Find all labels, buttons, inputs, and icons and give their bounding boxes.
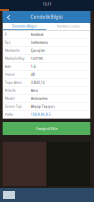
staticText: Arsa xyxy=(31,88,38,93)
staticText: Mahalle/Köy xyxy=(5,56,25,61)
staticText: 1/2/100 xyxy=(31,56,43,61)
button[interactable]: Fotoğraf Ekle xyxy=(3,122,90,135)
staticText: İl xyxy=(5,32,7,37)
button[interactable]: Back xyxy=(3,11,14,23)
staticText: Ada xyxy=(5,64,11,69)
staticText: İlçe xyxy=(5,40,11,45)
staticText: Tapu Alanı xyxy=(5,80,22,85)
staticText: 1-6 xyxy=(31,64,36,69)
staticText: Fotoğraf Ekle xyxy=(35,126,57,131)
staticText: Kontrol Listesi xyxy=(57,24,80,29)
staticText: Pafta xyxy=(5,112,13,117)
button[interactable]: Denetim Bilgisi xyxy=(3,23,46,30)
staticText: Karabük xyxy=(31,32,44,37)
staticText: Muhtarlık xyxy=(5,48,20,53)
staticText: Çavuşlar xyxy=(31,48,45,53)
staticText: 13:11 xyxy=(42,1,51,7)
staticText: 48 xyxy=(31,72,35,77)
button[interactable]: Kontrol Listesi xyxy=(46,23,90,30)
staticText: Model xyxy=(5,96,15,101)
staticText: 3.843,12 xyxy=(31,80,45,85)
staticText: Betonarme xyxy=(31,96,48,101)
staticText: Denetim Bilgisi xyxy=(12,24,37,29)
staticText: Safranbolu xyxy=(31,40,48,45)
staticText: Parsel xyxy=(5,72,15,77)
staticText: Zemin Tipi xyxy=(5,104,22,109)
staticText: Ahşap Taşıyıcı xyxy=(31,104,55,109)
staticText: Cendelik Bilgisi xyxy=(30,14,62,20)
staticText: 158.8.86.8.5 xyxy=(31,112,51,117)
staticText: Nitelik xyxy=(5,88,16,93)
